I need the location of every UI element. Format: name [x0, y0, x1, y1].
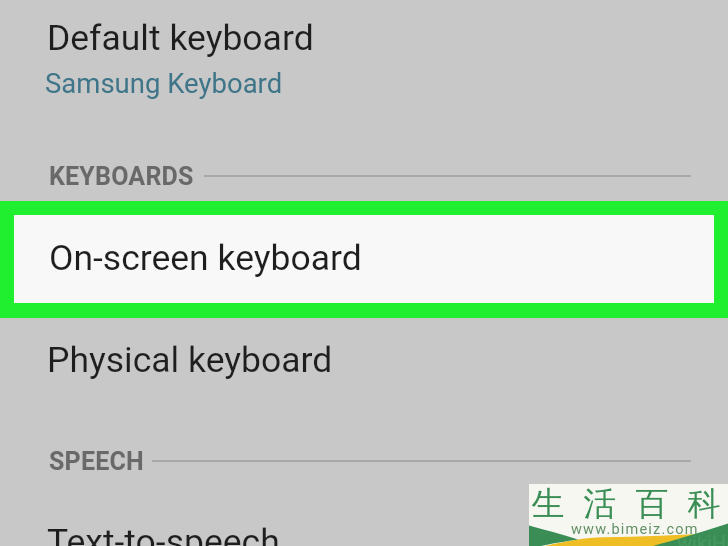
button[interactable]: Physical keyboard — [0, 318, 728, 423]
staticText: Physical keyboard — [47, 339, 333, 381]
staticText: www.bimeiz.com — [571, 521, 699, 538]
staticText: 生活百科 — [522, 483, 721, 525]
staticText: Samsung Keyboard — [45, 67, 283, 99]
staticText: SPEECH — [49, 447, 144, 476]
staticText: Default keyboard — [47, 17, 314, 59]
staticText: On-screen keyboard — [49, 237, 362, 279]
staticText: wikiHow — [677, 531, 728, 546]
staticText: KEYBOARDS — [49, 162, 194, 191]
button[interactable]: Default keyboard — [0, 0, 728, 145]
button[interactable]: Text-to-speech — [0, 505, 728, 546]
other: bimeiz.com watermark — [529, 484, 728, 546]
button[interactable]: On-screen keyboard — [0, 201, 728, 318]
staticText: Text-to-speech — [47, 521, 280, 546]
